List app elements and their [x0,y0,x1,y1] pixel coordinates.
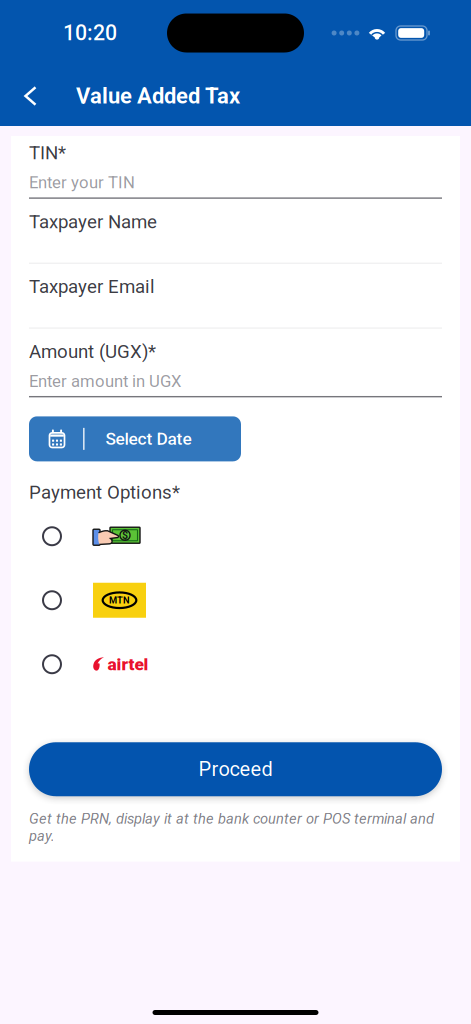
button[interactable]: Airtel Money [29,644,442,684]
staticText: Amount (UGX)* [29,341,156,362]
staticText: 10:20 [63,20,117,45]
button[interactable]: MTN Mobile Money [29,580,442,620]
button[interactable]: Proceed [29,742,442,796]
button[interactable]: Back [0,73,76,119]
button[interactable]: Select Date [29,416,241,461]
staticText: Value Added Tax [76,83,240,109]
staticText: $ [122,529,128,541]
staticText: Enter amount in UGX [29,371,181,391]
staticText: Taxpayer Email [29,276,155,298]
staticText: TIN* [29,142,66,164]
staticText: Payment Options* [29,481,180,503]
staticText: Enter your TIN [29,173,135,192]
staticText: MTN [109,595,130,606]
staticText: Get the PRN, display it at the bank coun… [29,810,434,845]
staticText: airtel [107,654,148,674]
staticText: Select Date [106,429,192,449]
staticText: Taxpayer Name [29,211,157,233]
button[interactable]: Cash [29,516,442,556]
staticText: Proceed [198,757,272,781]
